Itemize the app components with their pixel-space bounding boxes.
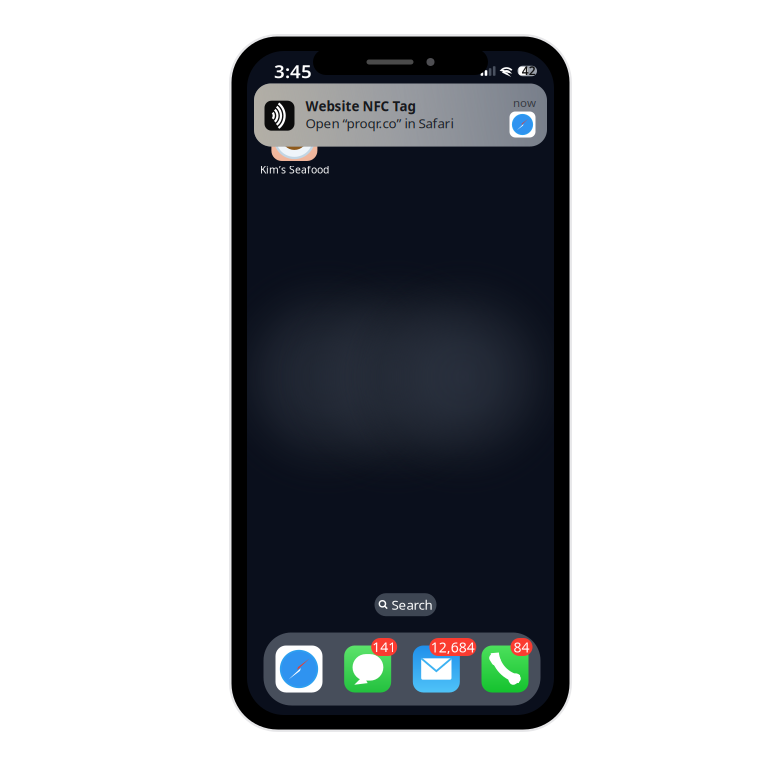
button[interactable]: Phone, 84 missed [481,645,528,692]
button[interactable]: Safari [275,645,322,692]
staticText: Kim’s Seafood [260,162,329,177]
staticText: 84 [513,637,529,657]
staticText: 42 [522,63,536,79]
staticText: 3:45 [274,59,312,83]
staticText: Search [391,596,432,614]
button[interactable]: Messages, 141 unread [344,645,391,692]
staticText: 141 [372,637,396,657]
button[interactable]: Kim’s Seafood [257,51,331,181]
button[interactable]: Website NFC Tag [254,83,547,146]
staticText: 12,684 [431,637,475,657]
staticText: now [513,95,536,110]
button[interactable]: Mail, 12,684 unread [413,645,460,692]
staticText: Website NFC Tag [305,97,415,115]
button[interactable]: Search [374,593,436,616]
staticText: Open “proqr.co” in Safari [305,114,453,132]
